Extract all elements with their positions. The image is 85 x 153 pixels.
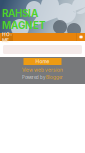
staticText: View web version (22, 67, 63, 73)
button[interactable]: View web version (0, 68, 85, 72)
button[interactable]: Home (23, 58, 61, 65)
staticText: RAHSIA (2, 7, 38, 19)
staticText: Home (35, 59, 49, 64)
staticText: Blogger (46, 75, 63, 80)
staticText: MAGNET (2, 19, 46, 31)
button[interactable]: HOME (1, 34, 13, 41)
staticText: HOME (2, 32, 12, 43)
button[interactable]: Search (77, 33, 85, 41)
staticText: Powered by (22, 75, 45, 80)
